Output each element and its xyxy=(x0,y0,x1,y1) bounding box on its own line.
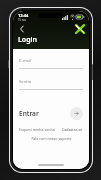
staticText: Esqueci minha senha xyxy=(19,127,55,132)
button[interactable]: Back xyxy=(16,23,27,34)
staticText: 15 nov xyxy=(18,18,27,22)
button[interactable]: Logo xyxy=(73,22,86,35)
staticText: 12:44 xyxy=(18,13,29,18)
staticText: Login xyxy=(18,35,37,45)
button[interactable]: Senha xyxy=(19,79,83,90)
button[interactable]: Cadastre-se xyxy=(62,127,83,132)
staticText: Cadastre-se xyxy=(62,127,83,132)
staticText: Entrar xyxy=(19,109,39,118)
button[interactable]: Entrar xyxy=(19,105,83,121)
staticText: Senha xyxy=(19,79,32,85)
button[interactable]: Esqueci minha senha xyxy=(19,127,55,132)
staticText: E-mail xyxy=(19,58,32,64)
button[interactable]: E-mail xyxy=(19,58,83,69)
staticText: Fale com nosso suporte xyxy=(31,136,72,141)
button[interactable]: Fale com nosso suporte xyxy=(19,136,83,141)
